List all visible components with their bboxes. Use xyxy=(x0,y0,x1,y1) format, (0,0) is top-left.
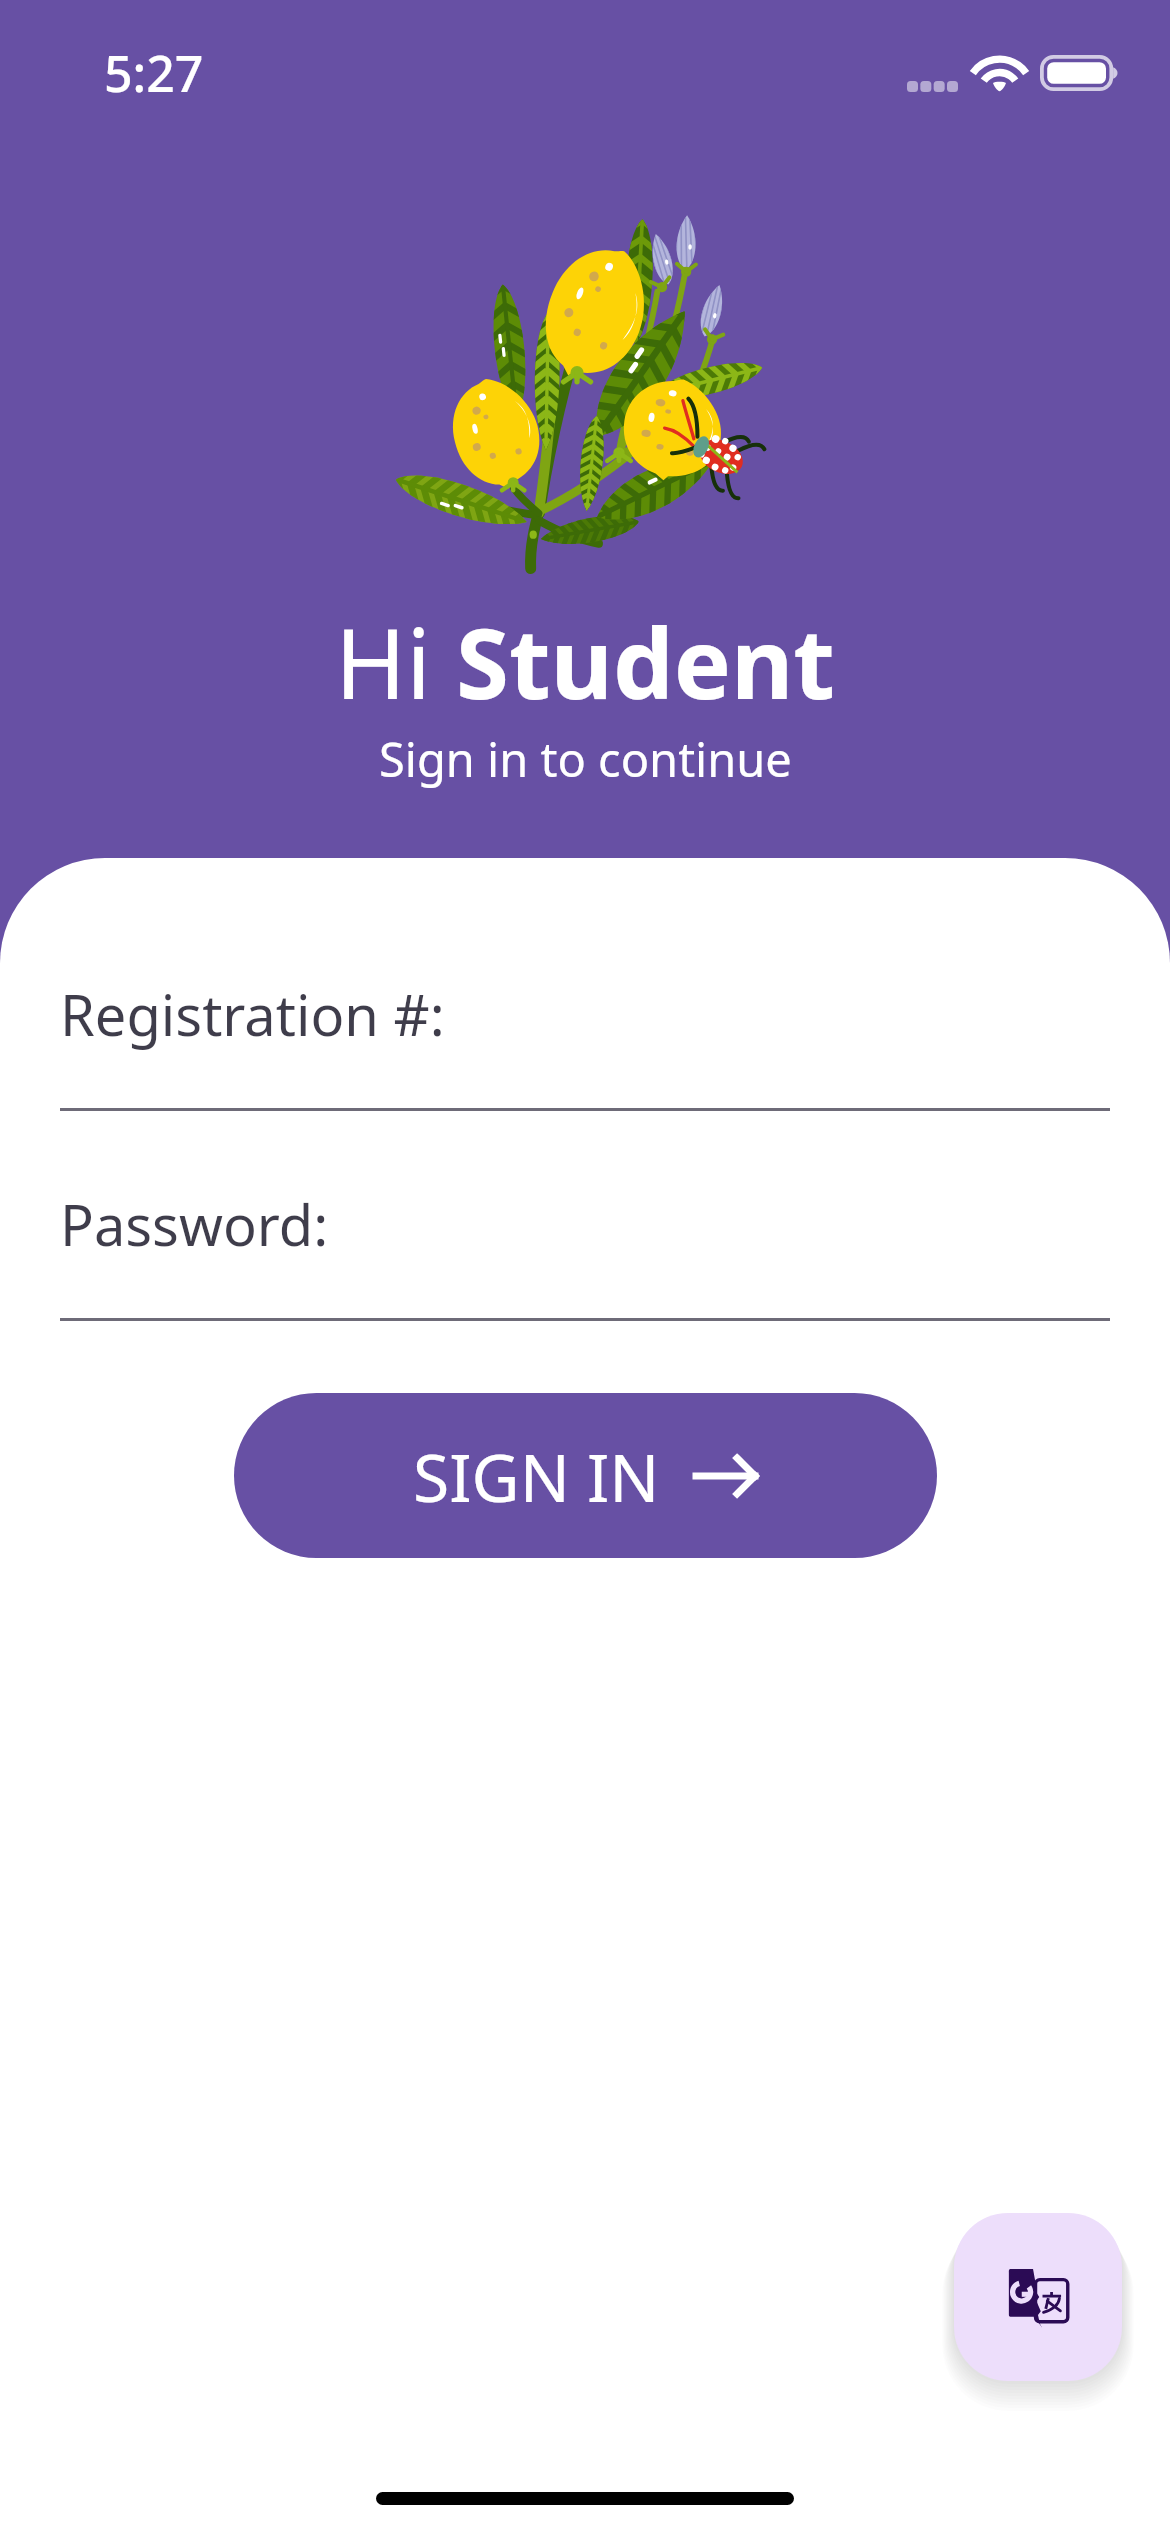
staticText: Hi xyxy=(335,596,456,727)
button[interactable]: Password: xyxy=(60,1186,1110,1321)
button[interactable]: SIGN IN xyxy=(234,1393,937,1558)
staticText: Sign in to continue xyxy=(379,727,792,791)
staticText: Registration #: xyxy=(60,976,445,1052)
staticText: 5:27 xyxy=(104,39,204,107)
staticText: Password: xyxy=(60,1186,329,1262)
button[interactable]: Registration #: xyxy=(60,976,1110,1111)
staticText: Student xyxy=(456,596,836,727)
button[interactable]: Translate xyxy=(954,2213,1122,2381)
staticText: SIGN IN xyxy=(413,1431,660,1521)
